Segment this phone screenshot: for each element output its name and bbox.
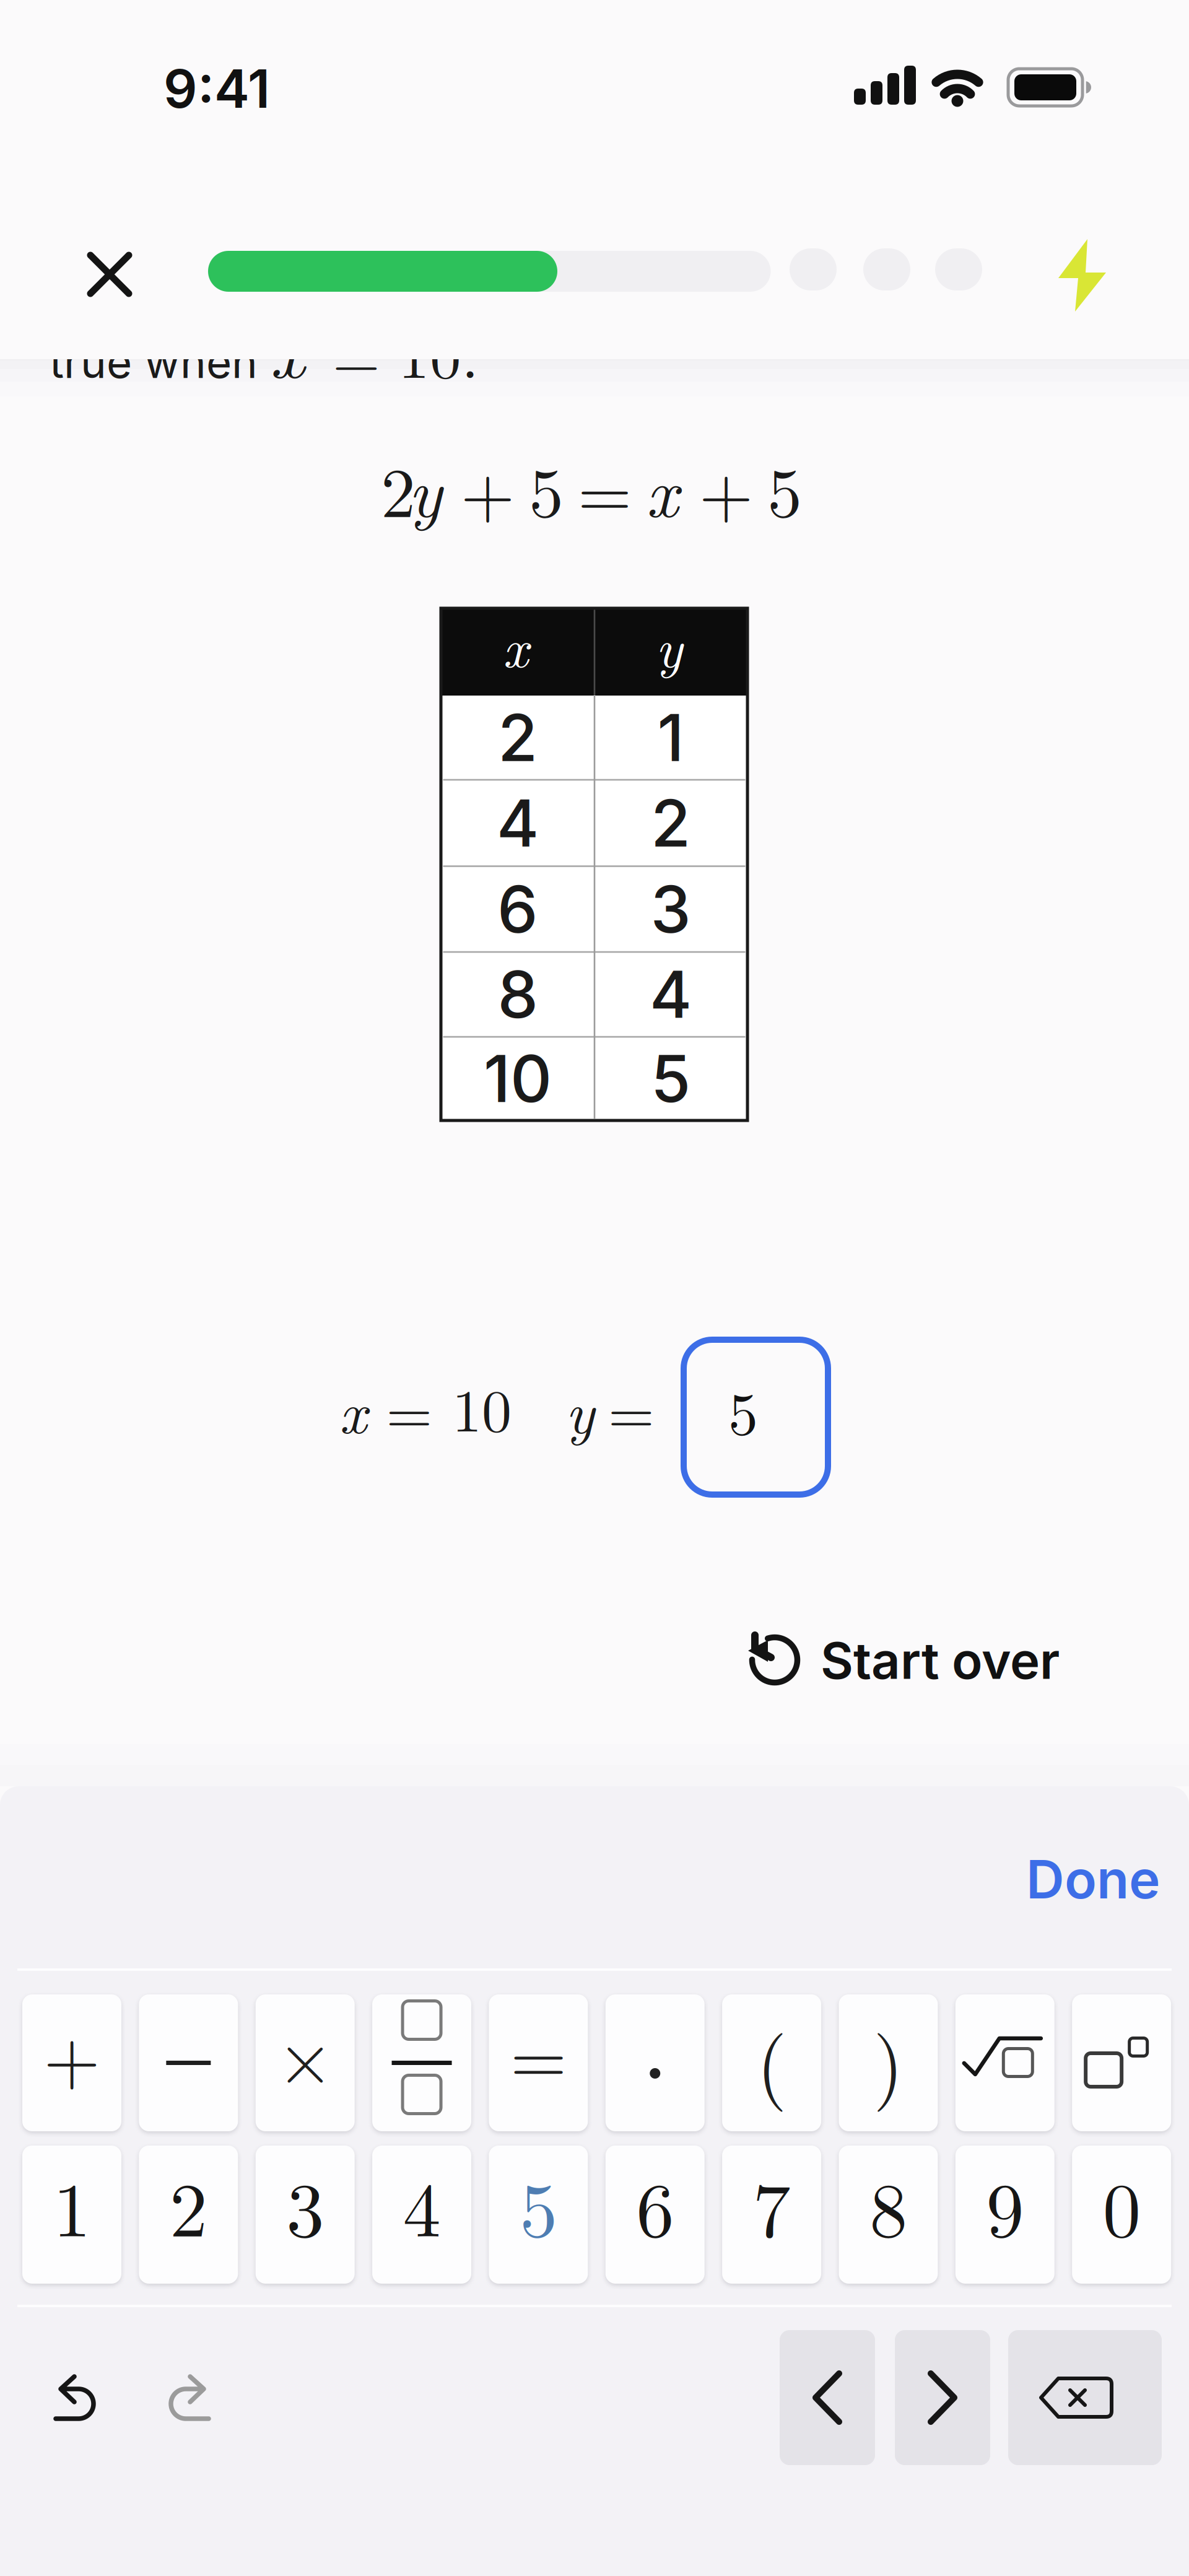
staticText: 5: [520, 2151, 557, 2259]
staticText: y: [655, 605, 682, 683]
staticText: 10.: [398, 307, 479, 396]
staticText: 6: [636, 2151, 674, 2259]
staticText: 5: [529, 439, 564, 537]
button[interactable]: 8: [839, 2146, 938, 2284]
button[interactable]: 5: [489, 2146, 588, 2284]
staticText: =: [333, 309, 380, 396]
button[interactable]: [955, 1994, 1054, 2131]
staticText: (: [757, 2004, 787, 2115]
button[interactable]: (: [722, 1994, 821, 2131]
staticText: 6: [497, 870, 538, 948]
button[interactable]: [372, 1994, 471, 2131]
button[interactable]: 6: [606, 2146, 705, 2284]
button[interactable]: 7: [722, 2146, 821, 2284]
button[interactable]: [1072, 1994, 1171, 2131]
staticText: 2: [651, 784, 690, 862]
staticText: 4: [403, 2151, 441, 2259]
staticText: 1: [657, 699, 684, 777]
staticText: x: [339, 1366, 367, 1451]
staticText: true when: [50, 336, 258, 389]
staticText: =: [608, 1366, 655, 1451]
staticText: 5: [767, 439, 802, 537]
staticText: 10: [484, 1040, 552, 1118]
staticText: Done: [1026, 1847, 1160, 1911]
staticText: ): [873, 2004, 904, 2115]
button[interactable]: 1: [22, 2146, 121, 2284]
button[interactable]: [895, 2330, 990, 2465]
staticText: y: [408, 439, 442, 537]
button[interactable]: [1008, 2330, 1162, 2465]
staticText: 0: [1103, 2151, 1140, 2259]
staticText: +: [44, 2001, 100, 2104]
staticText: 3: [286, 2151, 324, 2259]
staticText: =: [578, 439, 632, 537]
staticText: +: [461, 439, 515, 537]
button[interactable]: 0: [1072, 2146, 1171, 2284]
staticText: 4: [497, 784, 539, 862]
staticText: 4: [650, 955, 692, 1033]
staticText: 8: [498, 955, 538, 1033]
button[interactable]: =: [489, 1994, 588, 2131]
staticText: 2: [381, 439, 416, 537]
button[interactable]: 5: [684, 1340, 828, 1495]
button[interactable]: Start over: [749, 1626, 1060, 1695]
staticText: =: [386, 1366, 433, 1451]
staticText: 2: [498, 699, 538, 777]
button[interactable]: [0, 0, 1189, 2576]
button[interactable]: [606, 1994, 705, 2131]
button[interactable]: 9: [955, 2146, 1054, 2284]
staticText: 10: [452, 1364, 512, 1449]
staticText: =: [510, 2001, 567, 2104]
staticText: ×: [277, 2001, 333, 2104]
staticText: y: [565, 1366, 594, 1451]
button[interactable]: [169, 2377, 210, 2420]
button[interactable]: 4: [372, 2146, 471, 2284]
staticText: 3: [651, 870, 691, 948]
button[interactable]: +: [22, 1994, 121, 2131]
staticText: Start over: [821, 1630, 1060, 1691]
button[interactable]: ): [839, 1994, 938, 2131]
staticText: 1: [53, 2151, 91, 2259]
button[interactable]: [139, 1994, 238, 2131]
staticText: 5: [651, 1040, 690, 1118]
staticText: x: [269, 292, 305, 400]
staticText: x: [503, 605, 528, 683]
staticText: +: [699, 439, 753, 537]
staticText: 8: [869, 2151, 907, 2259]
staticText: 9:41: [163, 57, 270, 121]
staticText: 5: [728, 1368, 758, 1452]
button[interactable]: Done: [1013, 1842, 1174, 1916]
button[interactable]: [780, 2330, 875, 2465]
button[interactable]: 3: [256, 2146, 355, 2284]
staticText: 9: [986, 2151, 1024, 2259]
staticText: x: [646, 439, 678, 537]
button[interactable]: 2: [139, 2146, 238, 2284]
button[interactable]: [54, 2377, 95, 2420]
button[interactable]: ×: [256, 1994, 355, 2131]
staticText: 2: [170, 2151, 207, 2259]
staticText: 7: [753, 2151, 791, 2259]
